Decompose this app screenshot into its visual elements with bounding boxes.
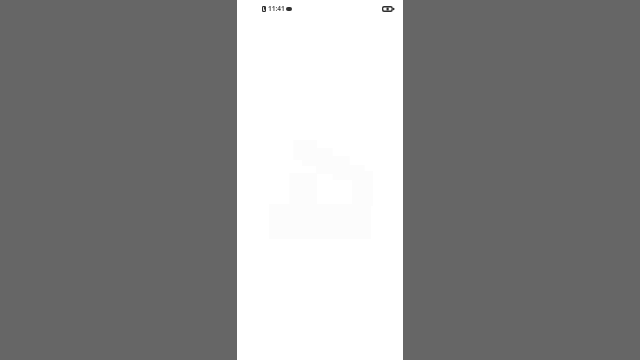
button[interactable]: Screen recording indicator	[262, 6, 266, 12]
button[interactable]: Battery	[382, 6, 394, 12]
staticText: 11:41	[268, 4, 285, 13]
